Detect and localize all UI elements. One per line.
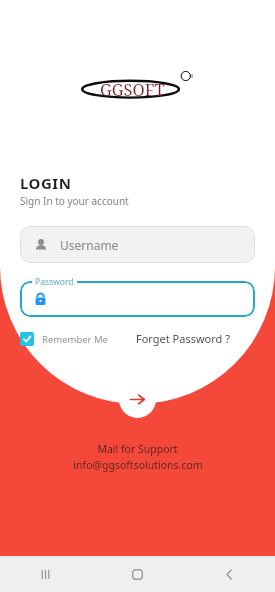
staticText: R bbox=[190, 73, 194, 80]
staticText: Mail for Support bbox=[97, 442, 178, 456]
button[interactable]: Remember Me bbox=[20, 332, 108, 346]
button[interactable]: Username bbox=[20, 226, 255, 263]
staticText: Remember Me bbox=[42, 333, 108, 346]
staticText: Sign In to your account bbox=[20, 194, 129, 208]
button[interactable]: Back bbox=[183, 556, 275, 592]
staticText: GGSOFT bbox=[100, 78, 165, 100]
button[interactable]: Forget Password ? bbox=[136, 331, 230, 346]
button[interactable]: Sign in bbox=[119, 381, 156, 418]
button[interactable] bbox=[20, 281, 255, 317]
staticText: Username bbox=[60, 237, 119, 253]
staticText: Password bbox=[35, 276, 74, 288]
button[interactable]: Home bbox=[91, 556, 183, 592]
staticText: info@ggsoftsolutions.com bbox=[73, 458, 203, 472]
button[interactable]: Recent apps bbox=[0, 556, 91, 592]
staticText: LOGIN bbox=[20, 173, 72, 193]
